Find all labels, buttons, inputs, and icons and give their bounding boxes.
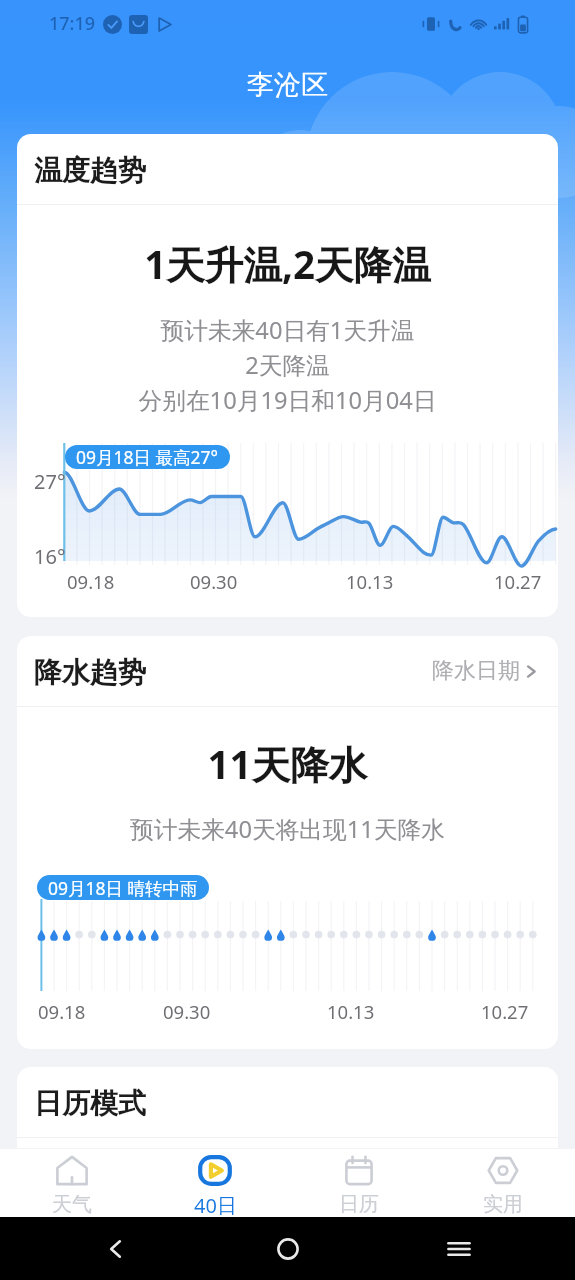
staticText: 实用 xyxy=(483,1192,523,1217)
staticText: 16° xyxy=(34,543,66,570)
other: 天气 xyxy=(55,1155,89,1186)
other: 实用 xyxy=(486,1155,520,1186)
staticText: 10.13 xyxy=(327,999,375,1024)
button[interactable]: 40日 xyxy=(143,1149,287,1217)
staticText: 降水趋势 xyxy=(34,655,146,690)
staticText: 2天降温 xyxy=(17,349,558,381)
staticText: 预计未来40日有1天升温 xyxy=(17,314,558,346)
other: 日历 xyxy=(342,1155,376,1186)
button[interactable]: 天气 xyxy=(0,1149,143,1217)
staticText: 27° xyxy=(34,468,66,495)
button[interactable]: 实用 xyxy=(431,1149,575,1217)
staticText: 10.27 xyxy=(494,569,542,594)
staticText: 09.18 xyxy=(67,569,115,594)
staticText: 降水日期 xyxy=(432,657,520,685)
staticText: 10.27 xyxy=(481,999,529,1024)
staticText: 11天降水 xyxy=(17,738,558,791)
staticText: 10.13 xyxy=(346,569,394,594)
staticText: 天气 xyxy=(52,1192,92,1217)
button[interactable]: 日历 xyxy=(287,1149,431,1217)
staticText: 温度趋势 xyxy=(34,153,146,188)
staticText: 日历模式 xyxy=(34,1086,146,1121)
staticText: 17:19 xyxy=(49,11,96,36)
staticText: 分别在10月19日和10月04日 xyxy=(17,384,558,416)
button[interactable]: Recent apps xyxy=(439,1229,479,1269)
staticText: 09.30 xyxy=(190,569,238,594)
button[interactable]: Home xyxy=(268,1229,308,1269)
staticText: 09.18 xyxy=(38,999,86,1024)
staticText: 日历 xyxy=(339,1192,379,1217)
staticText: 09月18日 晴转中雨 xyxy=(48,876,198,900)
staticText: 1天升温,2天降温 xyxy=(17,238,558,291)
button[interactable]: Back xyxy=(96,1229,136,1269)
staticText: 预计未来40天将出现11天降水 xyxy=(17,813,558,845)
button[interactable]: 降水日期 xyxy=(418,636,558,706)
staticText: 李沧区 xyxy=(247,68,328,102)
other: 40日 xyxy=(198,1155,232,1186)
staticText: 09.30 xyxy=(163,999,211,1024)
staticText: 40日 xyxy=(194,1192,237,1217)
staticText: 09月18日 最高27° xyxy=(76,445,219,469)
